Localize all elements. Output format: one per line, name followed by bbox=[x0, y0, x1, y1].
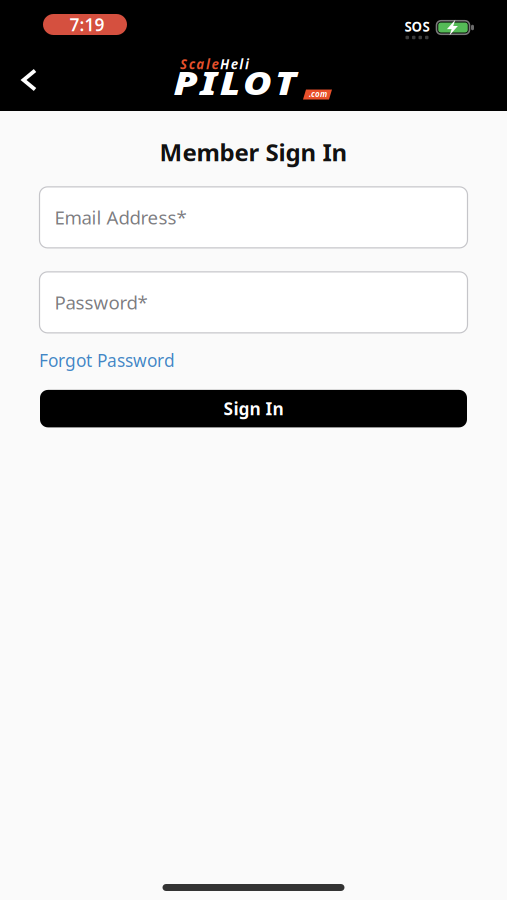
staticText: l bbox=[239, 55, 243, 73]
staticText: .com bbox=[309, 89, 327, 99]
staticText: O bbox=[241, 61, 265, 104]
staticText: L bbox=[222, 61, 239, 104]
button[interactable]: 7:19 bbox=[43, 14, 127, 35]
staticText: Member Sign In bbox=[159, 136, 347, 168]
button[interactable]: Sign In bbox=[40, 390, 467, 427]
staticText: c bbox=[189, 55, 195, 73]
staticText: S bbox=[180, 55, 187, 73]
button[interactable]: Password* bbox=[39, 272, 467, 333]
staticText: a bbox=[196, 55, 204, 73]
button[interactable]: Email Address* bbox=[39, 187, 467, 248]
staticText: H bbox=[220, 55, 229, 73]
staticText: SOS bbox=[404, 18, 429, 35]
staticText: e bbox=[231, 55, 238, 73]
button[interactable]: Forgot Password bbox=[39, 349, 175, 372]
staticText: Email Address* bbox=[54, 205, 186, 230]
staticText: P bbox=[184, 61, 204, 104]
staticText: Password* bbox=[54, 290, 147, 315]
staticText: i bbox=[245, 55, 249, 73]
staticText: Forgot Password bbox=[39, 349, 175, 372]
staticText: Sign In bbox=[223, 397, 283, 420]
button[interactable] bbox=[11, 59, 47, 101]
staticText: 7:19 bbox=[69, 13, 104, 36]
staticText: e bbox=[211, 55, 218, 73]
staticText: T bbox=[267, 61, 285, 104]
staticText: I bbox=[206, 61, 220, 104]
staticText: l bbox=[206, 55, 210, 73]
